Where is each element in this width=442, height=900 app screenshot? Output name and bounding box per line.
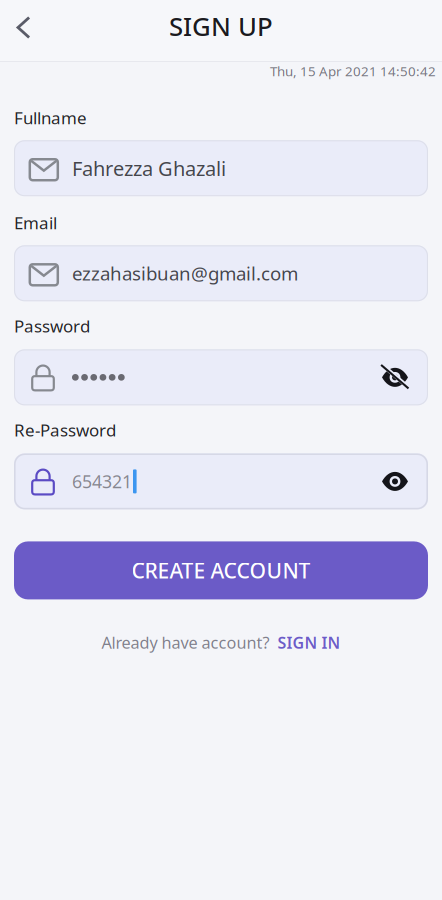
staticText: 654321 bbox=[72, 469, 132, 493]
staticText: CREATE ACCOUNT bbox=[131, 556, 310, 585]
staticText: Password bbox=[14, 314, 90, 337]
staticText: SIGN UP bbox=[169, 8, 273, 43]
button[interactable]: Hide password bbox=[374, 453, 416, 509]
staticText: Email bbox=[14, 211, 57, 234]
staticText: SIGN IN bbox=[277, 632, 340, 653]
staticText: Already have account? bbox=[101, 631, 269, 654]
button[interactable]: Back bbox=[7, 4, 40, 56]
staticText: Thu, 15 Apr 2021 14:50:42 bbox=[270, 62, 436, 80]
staticText: Re-Password bbox=[14, 418, 116, 441]
button[interactable]: SIGN IN bbox=[277, 632, 340, 653]
staticText: Fullname bbox=[14, 106, 87, 129]
button[interactable]: CREATE ACCOUNT bbox=[14, 541, 428, 599]
staticText: Fahrezza Ghazali bbox=[72, 155, 226, 182]
staticText: ezzahasibuan@gmail.com bbox=[72, 261, 298, 286]
button[interactable]: Show password bbox=[374, 349, 416, 405]
